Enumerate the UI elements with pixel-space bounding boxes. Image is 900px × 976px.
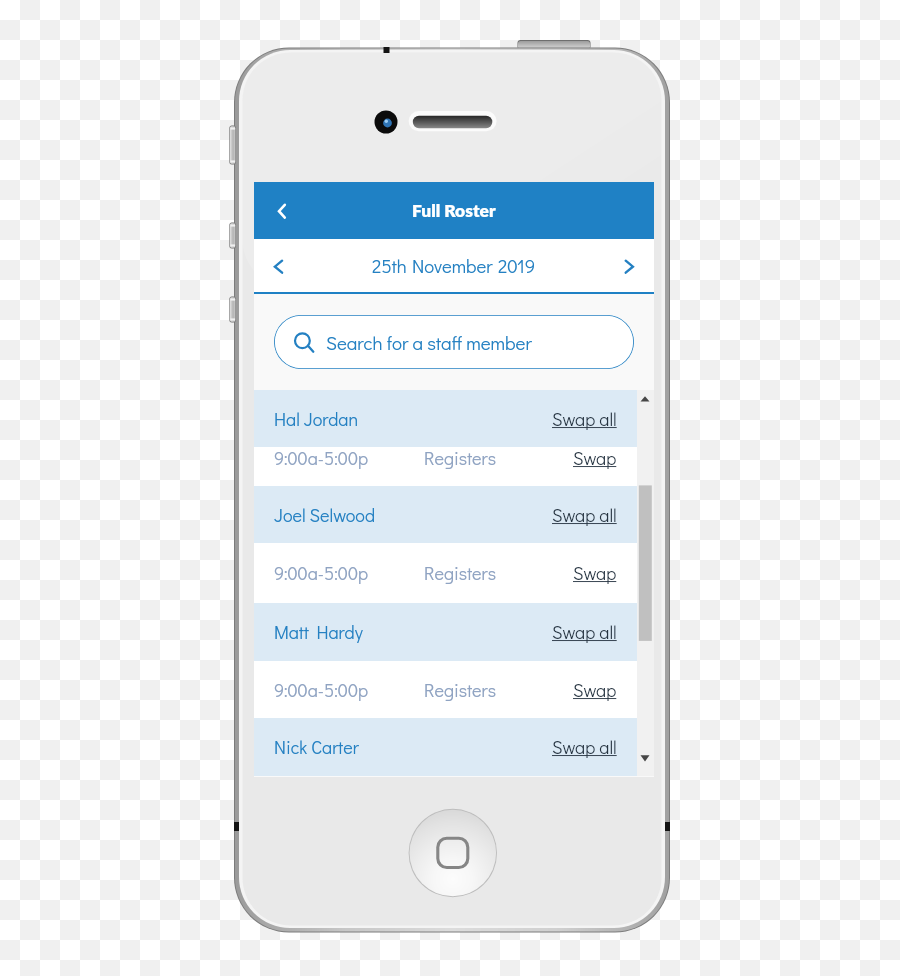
staticText: Search for a staff member bbox=[326, 330, 532, 355]
staticText: Swap all bbox=[552, 407, 617, 431]
button[interactable]: Nick Carter bbox=[254, 718, 654, 776]
button[interactable]: Matt Hardy bbox=[254, 603, 654, 661]
staticText: November bbox=[412, 254, 493, 278]
staticText: Swap bbox=[573, 561, 617, 585]
staticText: Swap all bbox=[552, 620, 617, 644]
button[interactable]: Hal Jordan bbox=[254, 390, 654, 447]
staticText: Full Roster bbox=[412, 200, 496, 221]
button[interactable]: 9:00a-5:00p bbox=[254, 447, 654, 486]
staticText: Matt Hardy bbox=[274, 620, 363, 644]
staticText: Hal Jordan bbox=[274, 407, 359, 431]
staticText: Swap bbox=[573, 678, 617, 702]
staticText: 9:00a-5:00p bbox=[274, 678, 369, 702]
staticText: Swap all bbox=[552, 503, 617, 527]
staticText: Swap bbox=[573, 446, 617, 470]
staticText: Registers bbox=[424, 446, 497, 470]
button[interactable]: Next day bbox=[612, 246, 646, 280]
other: Scroll bar bbox=[637, 390, 654, 776]
staticText: 9:00a-5:00p bbox=[274, 561, 369, 585]
staticText: Registers bbox=[424, 678, 497, 702]
staticText: 9:00a-5:00p bbox=[274, 446, 369, 470]
button[interactable]: Joel Selwood bbox=[254, 486, 654, 543]
staticText: Joel Selwood bbox=[274, 503, 375, 527]
staticText: 2019 bbox=[498, 254, 536, 278]
button[interactable]: Back bbox=[268, 195, 300, 227]
button[interactable]: Previous day bbox=[261, 246, 295, 280]
staticText: Nick Carter bbox=[274, 735, 359, 759]
staticText: Registers bbox=[424, 561, 497, 585]
button[interactable]: 9:00a-5:00p bbox=[254, 661, 654, 718]
button[interactable]: 9:00a-5:00p bbox=[254, 543, 654, 603]
staticText: 25th bbox=[372, 254, 407, 278]
button[interactable]: Search for a staff member bbox=[274, 315, 634, 369]
staticText: Swap all bbox=[552, 735, 617, 759]
